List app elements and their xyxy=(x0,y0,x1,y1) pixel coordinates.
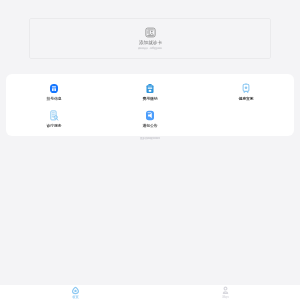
staticText: 健康宣教 xyxy=(238,96,254,101)
button[interactable]: 诊疗服务 xyxy=(6,110,102,128)
button[interactable]: 首页 xyxy=(0,285,150,300)
button[interactable]: 挂号信息 xyxy=(6,83,102,101)
staticText: 添加就诊卡 xyxy=(139,40,162,46)
staticText: 通知公告 xyxy=(142,123,158,128)
button[interactable]: 健康宣教 xyxy=(198,83,294,101)
staticText: 更多功能敬请期待 xyxy=(140,137,160,140)
staticText: 绑定就诊卡，享受更多服务 xyxy=(138,47,162,50)
staticText: 首页 xyxy=(72,295,79,299)
button[interactable]: 添加就诊卡 xyxy=(29,18,271,59)
button[interactable]: 通知公告 xyxy=(102,110,198,128)
staticText: 诊疗服务 xyxy=(46,123,62,128)
staticText: 挂号信息 xyxy=(46,96,62,101)
button[interactable]: 我的 xyxy=(150,285,300,300)
button[interactable]: 费用缴纳 xyxy=(102,83,198,101)
staticText: 费用缴纳 xyxy=(142,96,158,101)
staticText: 我的 xyxy=(222,295,229,299)
